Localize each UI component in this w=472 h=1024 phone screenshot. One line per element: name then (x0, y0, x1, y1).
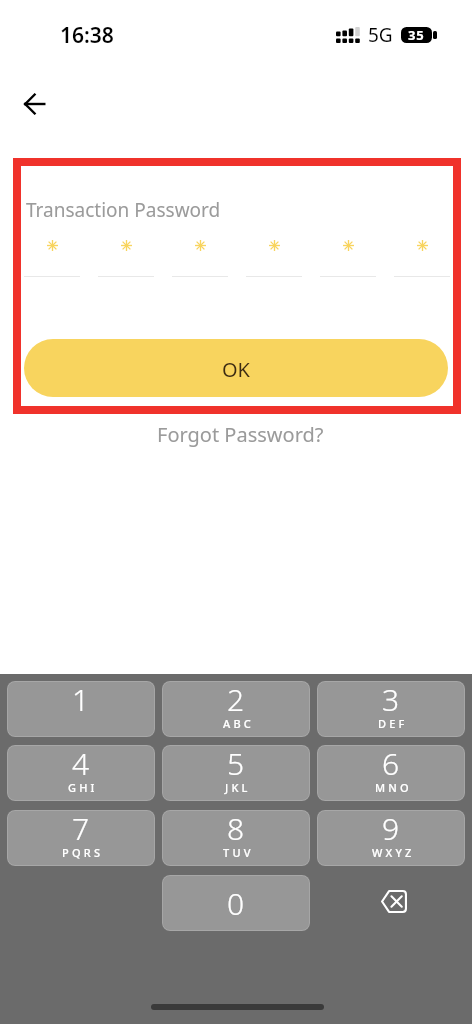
staticText: MNO (375, 780, 412, 795)
button[interactable]: 7 (7, 810, 155, 866)
button[interactable] (394, 228, 450, 278)
staticText: WXYZ (372, 845, 415, 860)
staticText: 7 (72, 810, 90, 849)
staticText: JKL (225, 780, 251, 795)
button[interactable]: Backspace (317, 875, 465, 931)
staticText: DEF (378, 716, 408, 731)
staticText: 2 (227, 681, 245, 720)
staticText: 0 (227, 883, 245, 924)
staticText: 8 (227, 810, 245, 849)
staticText: 1 (72, 681, 90, 720)
staticText: ABC (223, 716, 254, 731)
staticText: 5 (227, 745, 245, 784)
button[interactable]: 0 (162, 875, 310, 931)
button[interactable]: Forgot Password? (4, 418, 472, 450)
button[interactable]: 9 (317, 810, 465, 866)
button[interactable]: 8 (162, 810, 310, 866)
staticText: Forgot Password? (157, 421, 324, 448)
button[interactable] (24, 228, 80, 278)
button[interactable] (98, 228, 154, 278)
staticText: 5G (368, 22, 393, 48)
button[interactable]: 1 (7, 681, 155, 737)
button[interactable]: 5 (162, 745, 310, 801)
button[interactable]: 3 (317, 681, 465, 737)
staticText: OK (222, 356, 250, 383)
button[interactable] (320, 228, 376, 278)
button[interactable] (172, 228, 228, 278)
staticText: GHI (68, 780, 98, 795)
staticText: TUV (223, 845, 254, 860)
staticText: PQRS (62, 845, 104, 860)
staticText: 35 (408, 27, 425, 42)
button[interactable]: 6 (317, 745, 465, 801)
button[interactable]: OK (24, 339, 448, 397)
button[interactable] (246, 228, 302, 278)
button[interactable]: 4 (7, 745, 155, 801)
staticText: 4 (72, 745, 90, 784)
button[interactable]: 2 (162, 681, 310, 737)
staticText: 9 (382, 810, 400, 849)
staticText: 16:38 (60, 21, 114, 50)
staticText: 6 (382, 745, 400, 784)
button[interactable]: Back (12, 82, 56, 126)
staticText: 3 (382, 681, 400, 720)
staticText: Transaction Password (26, 197, 221, 223)
